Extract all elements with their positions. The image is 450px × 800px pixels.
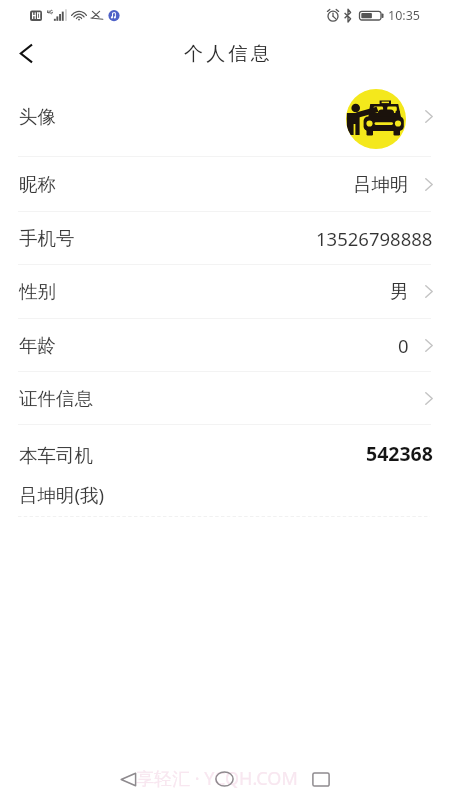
staticText: 10:35: [388, 7, 420, 24]
staticText: 13526798888: [316, 226, 433, 251]
staticText: 享轻汇 · YCQH.COM: [136, 766, 298, 791]
staticText: 头像: [19, 105, 56, 128]
button[interactable]: Back: [0, 30, 50, 76]
button[interactable]: 证件信息: [0, 372, 450, 424]
staticText: 吕坤明(我): [19, 482, 105, 507]
staticText: 男: [390, 280, 409, 303]
staticText: 0: [398, 333, 409, 358]
button[interactable]: Home: [202, 758, 247, 800]
staticText: 证件信息: [19, 387, 93, 410]
staticText: 年龄: [19, 334, 56, 357]
button[interactable]: 头像: [0, 76, 450, 156]
staticText: 昵称: [19, 173, 56, 196]
staticText: 手机号: [19, 227, 75, 250]
staticText: 个人信息: [184, 42, 273, 66]
button[interactable]: 手机号: [0, 212, 450, 264]
button[interactable]: 本车司机: [0, 425, 450, 516]
staticText: 本车司机: [19, 444, 93, 467]
staticText: 吕坤明: [353, 173, 409, 196]
button[interactable]: 年龄: [0, 319, 450, 371]
button[interactable]: 昵称: [0, 157, 450, 211]
staticText: 性别: [19, 280, 56, 303]
button[interactable]: Recents: [298, 758, 343, 800]
staticText: 542368: [366, 440, 433, 467]
button[interactable]: 性别: [0, 265, 450, 318]
button[interactable]: Back: [106, 758, 151, 800]
